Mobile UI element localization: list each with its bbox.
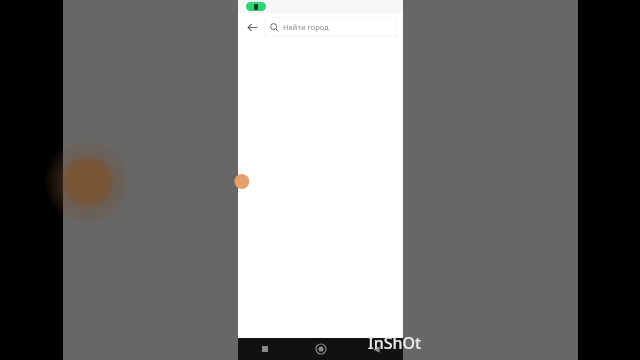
button[interactable]: Back — [367, 340, 385, 358]
button[interactable]: Recent apps — [256, 340, 274, 358]
button[interactable]: Найти город — [264, 17, 397, 37]
staticText: Найти город — [283, 22, 329, 32]
button[interactable]: Back — [242, 17, 262, 37]
button[interactable]: Home — [312, 340, 330, 358]
staticText: InShOt — [368, 332, 422, 354]
